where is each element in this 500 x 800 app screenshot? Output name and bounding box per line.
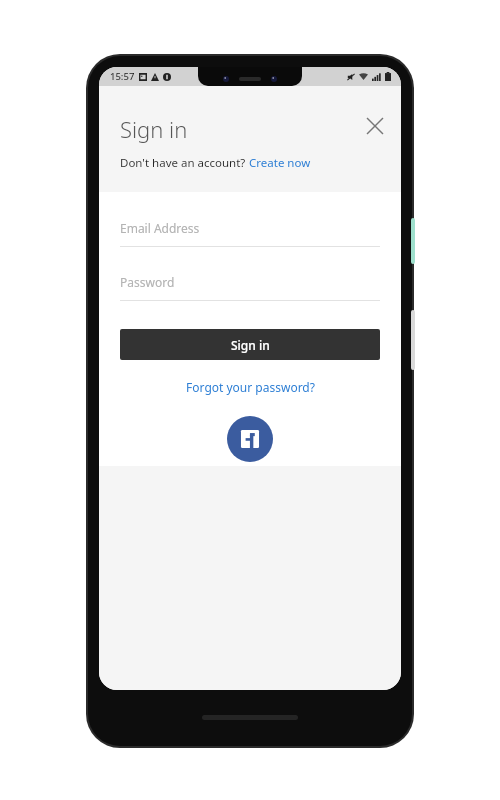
staticText: 15:57 [110,70,135,83]
button[interactable]: Password [120,271,380,293]
staticText: Sign in [120,114,188,144]
staticText: Forgot your password? [186,379,315,395]
staticText: Email Address [120,220,200,236]
staticText: Sign in [231,337,270,353]
button[interactable]: Close [357,108,393,144]
staticText: Password [120,274,175,290]
staticText: Don't have an account? [120,155,249,171]
button[interactable]: Sign in with Facebook [227,416,273,462]
button[interactable]: Forgot your password? [176,376,325,398]
button[interactable]: Sign in [120,329,380,360]
button[interactable]: Email Address [120,217,380,239]
staticText: Create now [249,155,311,171]
button[interactable]: Create now [249,155,311,171]
